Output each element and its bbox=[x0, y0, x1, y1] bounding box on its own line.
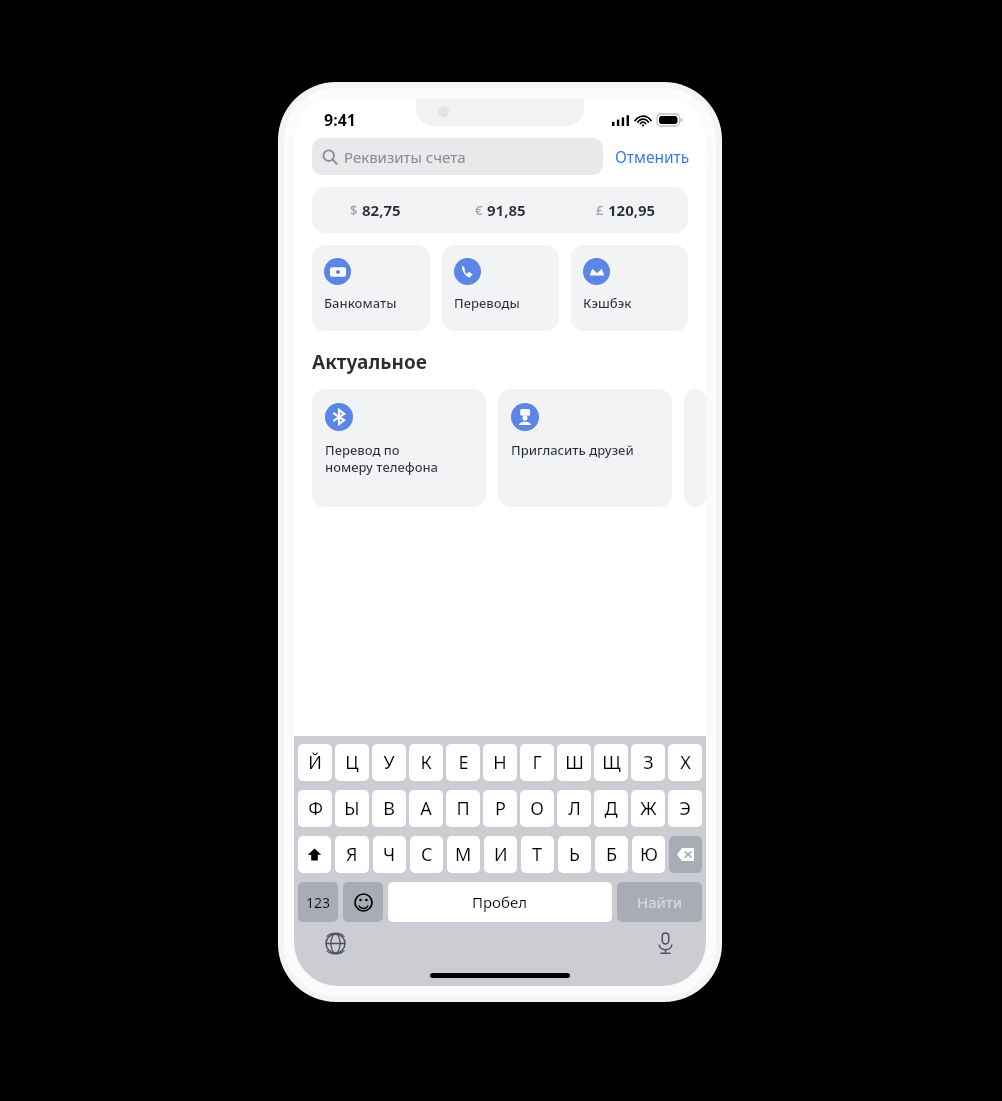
staticText: 9:41 bbox=[324, 109, 356, 131]
staticText: Переводы bbox=[454, 294, 520, 312]
staticText: Ч bbox=[383, 842, 396, 867]
other: Кэшбэк bbox=[589, 264, 605, 280]
button[interactable]: Переводы bbox=[442, 245, 559, 331]
staticText: 123 bbox=[306, 893, 331, 912]
staticText: Банкоматы bbox=[324, 294, 397, 312]
button[interactable]: Change language bbox=[322, 930, 348, 956]
staticText: Е bbox=[458, 750, 469, 775]
button[interactable]: $ bbox=[312, 187, 688, 233]
button[interactable]: Н bbox=[483, 744, 517, 781]
button[interactable]: Ю bbox=[632, 836, 665, 873]
staticText: Э bbox=[679, 796, 691, 821]
staticText: Л bbox=[568, 796, 581, 821]
button[interactable]: Backspace bbox=[669, 836, 702, 873]
button[interactable]: Shift bbox=[298, 836, 331, 873]
button[interactable]: С bbox=[410, 836, 443, 873]
button[interactable]: Б bbox=[595, 836, 628, 873]
button[interactable]: Е bbox=[446, 744, 480, 781]
button[interactable]: Т bbox=[521, 836, 554, 873]
staticText: Р bbox=[495, 796, 506, 821]
staticText: Н bbox=[493, 750, 507, 775]
staticText: Пробел bbox=[472, 892, 528, 912]
staticText: Д bbox=[604, 796, 618, 821]
staticText: Ю bbox=[640, 842, 658, 867]
other: Банкоматы bbox=[330, 264, 346, 280]
button[interactable]: Я bbox=[335, 836, 369, 873]
button[interactable]: Х bbox=[668, 744, 702, 781]
button[interactable]: Найти bbox=[617, 882, 702, 922]
staticText: Б bbox=[606, 842, 618, 867]
staticText: Я bbox=[346, 842, 358, 867]
button[interactable]: 123 bbox=[298, 882, 338, 922]
button[interactable]: З bbox=[631, 744, 665, 781]
staticText: И bbox=[494, 842, 508, 867]
button[interactable]: П bbox=[446, 790, 480, 827]
button[interactable]: Ь bbox=[558, 836, 591, 873]
staticText: Й bbox=[308, 750, 322, 775]
staticText: Перевод по номеру телефона bbox=[325, 441, 438, 476]
staticText: Актуальное bbox=[312, 349, 427, 375]
staticText: З bbox=[643, 750, 654, 775]
other: Пригласить друзей bbox=[517, 409, 533, 425]
button[interactable]: А bbox=[409, 790, 443, 827]
staticText: А bbox=[420, 796, 432, 821]
staticText: 91,85 bbox=[487, 200, 526, 220]
staticText: Найти bbox=[637, 892, 683, 912]
button[interactable]: Банкоматы bbox=[312, 245, 430, 331]
button[interactable]: Ф bbox=[298, 790, 332, 827]
button[interactable]: Ж bbox=[631, 790, 665, 827]
button[interactable]: Отменить bbox=[613, 142, 692, 171]
staticText: Кэшбэк bbox=[583, 294, 632, 312]
staticText: У bbox=[383, 750, 395, 775]
staticText: Х bbox=[680, 750, 691, 775]
staticText: Т bbox=[532, 842, 543, 867]
staticText: Ц bbox=[345, 750, 359, 775]
button[interactable]: Ы bbox=[335, 790, 369, 827]
button[interactable]: К bbox=[409, 744, 443, 781]
staticText: € bbox=[475, 201, 483, 219]
button[interactable]: Г bbox=[520, 744, 554, 781]
button[interactable]: Р bbox=[483, 790, 517, 827]
staticText: 82,75 bbox=[362, 200, 401, 220]
staticText: С bbox=[421, 842, 433, 867]
staticText: 120,95 bbox=[608, 200, 656, 220]
button[interactable]: Ш bbox=[557, 744, 591, 781]
staticText: П bbox=[456, 796, 470, 821]
button[interactable]: Dictation bbox=[652, 930, 678, 956]
button[interactable]: М bbox=[447, 836, 480, 873]
button[interactable]: Реквизиты счета bbox=[312, 138, 603, 175]
button[interactable]: Emoji bbox=[343, 882, 383, 922]
other: Переводы bbox=[460, 264, 475, 279]
button[interactable]: И bbox=[484, 836, 517, 873]
staticText: Ь bbox=[569, 842, 580, 867]
other: Перевод по номеру телефона bbox=[331, 409, 347, 425]
button[interactable]: Пробел bbox=[388, 882, 612, 922]
staticText: Г bbox=[532, 750, 542, 775]
button[interactable]: Й bbox=[298, 744, 332, 781]
staticText: £ bbox=[596, 201, 604, 219]
staticText: Ш bbox=[565, 750, 584, 775]
button[interactable]: Д bbox=[594, 790, 628, 827]
staticText: М bbox=[455, 842, 472, 867]
button[interactable]: В bbox=[372, 790, 406, 827]
button[interactable]: Ц bbox=[335, 744, 369, 781]
staticText: К bbox=[420, 750, 432, 775]
staticText: Щ bbox=[602, 750, 621, 775]
staticText: Реквизиты счета bbox=[344, 147, 466, 167]
button[interactable]: Э bbox=[668, 790, 702, 827]
button[interactable]: Л bbox=[557, 790, 591, 827]
button[interactable]: Перевод по номеру телефона bbox=[312, 389, 486, 507]
button[interactable]: Ч bbox=[373, 836, 406, 873]
button[interactable]: О bbox=[520, 790, 554, 827]
staticText: Ы bbox=[344, 796, 360, 821]
button[interactable]: Пригласить друзей bbox=[498, 389, 672, 507]
button[interactable]: Кэшбэк bbox=[571, 245, 688, 331]
staticText: О bbox=[530, 796, 544, 821]
button[interactable]: У bbox=[372, 744, 406, 781]
staticText: $ bbox=[350, 201, 358, 219]
staticText: Пригласить друзей bbox=[511, 441, 634, 459]
staticText: Отменить bbox=[615, 146, 690, 167]
button[interactable]: Щ bbox=[594, 744, 628, 781]
staticText: Ж bbox=[640, 796, 657, 821]
